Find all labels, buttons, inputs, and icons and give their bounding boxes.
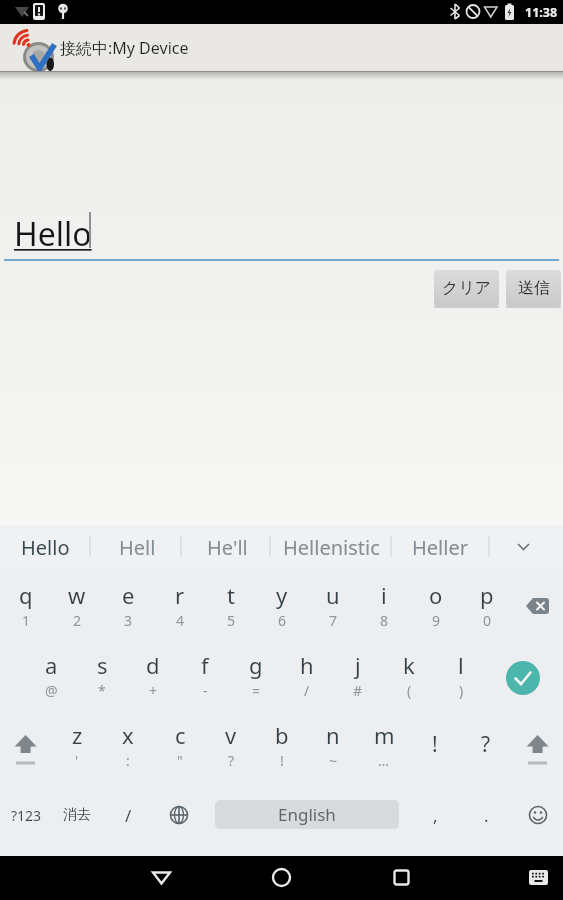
button[interactable]: z: [51, 708, 102, 778]
button[interactable]: k: [383, 638, 434, 708]
staticText: a: [45, 650, 58, 680]
button[interactable]: Hellenistic: [272, 526, 390, 568]
staticText: ~: [329, 751, 338, 769]
button[interactable]: h: [281, 638, 332, 708]
button[interactable]: He'll: [184, 526, 270, 568]
button[interactable]: f: [179, 638, 230, 708]
button[interactable]: t: [205, 568, 256, 638]
staticText: n: [326, 720, 340, 750]
staticText: /: [304, 681, 310, 699]
staticText: =: [252, 681, 261, 699]
button[interactable]: [506, 661, 540, 695]
staticText: x: [122, 720, 134, 750]
staticText: l: [458, 650, 464, 680]
button[interactable]: 消去: [52, 780, 102, 850]
button[interactable]: [512, 780, 562, 850]
staticText: 11:38: [525, 4, 558, 21]
staticText: v: [225, 720, 237, 750]
staticText: m: [374, 720, 395, 750]
staticText: g: [249, 650, 263, 680]
button[interactable]: Hello: [1, 526, 89, 568]
button[interactable]: English: [215, 800, 399, 829]
button[interactable]: b: [256, 708, 307, 778]
staticText: ": [177, 751, 183, 769]
button[interactable]: y: [256, 568, 307, 638]
button[interactable]: d: [127, 638, 178, 708]
button[interactable]: [257, 856, 305, 900]
button[interactable]: r: [154, 568, 205, 638]
button[interactable]: o: [410, 568, 461, 638]
staticText: !: [432, 730, 438, 759]
button[interactable]: [137, 856, 185, 900]
staticText: d: [146, 650, 160, 680]
staticText: :: [126, 751, 130, 769]
button[interactable]: ?123: [1, 780, 51, 850]
button[interactable]: m: [358, 708, 409, 778]
staticText: Hello: [14, 212, 92, 256]
staticText: i: [381, 580, 387, 610]
staticText: 接続中:My Device: [60, 37, 189, 59]
button[interactable]: 送信: [506, 270, 561, 306]
staticText: b: [275, 720, 289, 750]
button[interactable]: e: [102, 568, 153, 638]
staticText: ?: [481, 730, 491, 759]
staticText: 8: [380, 611, 389, 629]
button[interactable]: Heller: [393, 526, 487, 568]
staticText: ?: [228, 751, 235, 769]
button[interactable]: j: [332, 638, 383, 708]
button[interactable]: [514, 856, 562, 900]
staticText: @: [45, 681, 58, 699]
button[interactable]: Hello: [0, 210, 563, 270]
staticText: …: [378, 751, 390, 769]
staticText: .: [484, 804, 489, 827]
staticText: Hello: [21, 534, 70, 561]
staticText: !: [280, 751, 284, 769]
staticText: k: [403, 650, 415, 680]
staticText: j: [355, 650, 361, 680]
staticText: +: [149, 681, 158, 699]
button[interactable]: a: [25, 638, 76, 708]
button[interactable]: ?: [461, 709, 511, 779]
staticText: w: [68, 580, 86, 610]
staticText: f: [201, 650, 209, 680]
button[interactable]: [155, 780, 203, 850]
staticText: s: [97, 650, 108, 680]
button[interactable]: l: [435, 638, 486, 708]
button[interactable]: [0, 710, 50, 774]
button[interactable]: Hell: [93, 526, 181, 568]
button[interactable]: [500, 525, 548, 567]
staticText: (: [407, 681, 412, 699]
staticText: クリア: [442, 278, 492, 298]
staticText: h: [300, 650, 314, 680]
button[interactable]: ,: [415, 780, 455, 850]
button[interactable]: u: [307, 568, 358, 638]
staticText: 3: [124, 611, 133, 629]
button[interactable]: g: [230, 638, 281, 708]
staticText: t: [227, 580, 235, 610]
button[interactable]: /: [103, 780, 153, 850]
button[interactable]: n: [307, 708, 358, 778]
button[interactable]: x: [102, 708, 153, 778]
button[interactable]: i: [358, 568, 409, 638]
button[interactable]: クリア: [434, 270, 499, 306]
button[interactable]: [513, 576, 563, 636]
button[interactable]: q: [0, 568, 51, 638]
staticText: ): [459, 681, 464, 699]
button[interactable]: s: [76, 638, 127, 708]
button[interactable]: [377, 856, 425, 900]
button[interactable]: !: [410, 709, 460, 779]
staticText: p: [480, 580, 494, 610]
button[interactable]: v: [205, 708, 256, 778]
button[interactable]: w: [51, 568, 102, 638]
button[interactable]: .: [466, 780, 506, 850]
staticText: 0: [483, 611, 492, 629]
staticText: o: [429, 580, 443, 610]
staticText: 2: [73, 611, 82, 629]
button[interactable]: [512, 710, 562, 774]
button[interactable]: p: [461, 568, 512, 638]
staticText: ,: [433, 804, 438, 827]
staticText: u: [326, 580, 340, 610]
staticText: y: [276, 580, 288, 610]
staticText: He'll: [207, 534, 248, 561]
button[interactable]: c: [154, 708, 205, 778]
